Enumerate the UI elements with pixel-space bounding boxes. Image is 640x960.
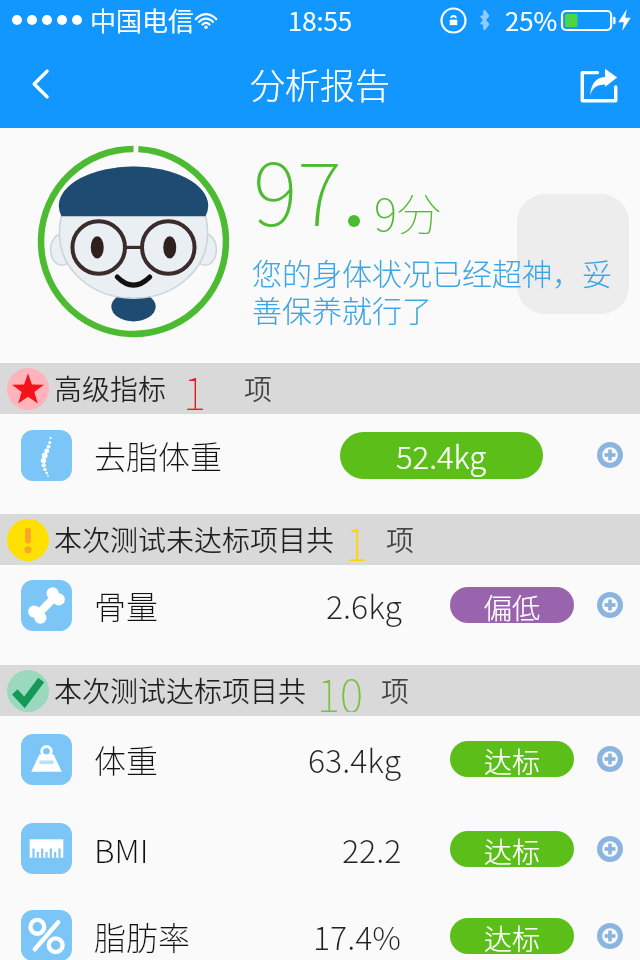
staticText: 63.4kg	[308, 736, 402, 782]
button[interactable]: Add	[590, 739, 630, 779]
staticText: 偏低	[484, 587, 541, 623]
staticText: 达标	[484, 741, 541, 777]
staticText: 骨量	[94, 582, 159, 628]
staticText: 本次测试未达标项目共	[54, 519, 335, 560]
button[interactable]: Add	[590, 585, 630, 625]
staticText: 10	[317, 661, 363, 712]
button[interactable]: 骨量	[0, 565, 640, 665]
staticText: 本次测试达标项目共	[54, 670, 307, 711]
staticText: 项	[244, 368, 273, 409]
button[interactable]: Share	[568, 53, 630, 115]
staticText: 项	[386, 519, 415, 560]
button[interactable]: 去脂体重	[0, 414, 640, 514]
staticText: 您的身体状况已经超神，妥善保养就行了	[252, 250, 620, 331]
staticText: 25%	[505, 1, 558, 39]
button[interactable]: Back	[10, 53, 72, 115]
staticText: 1	[345, 510, 368, 561]
staticText: 脂肪率	[94, 913, 191, 959]
staticText: 体重	[94, 736, 159, 782]
button[interactable]: 脂肪率	[0, 893, 640, 960]
button[interactable]: 体重	[0, 716, 640, 804]
button[interactable]: Add	[590, 829, 630, 869]
staticText: 52.4kg	[396, 433, 487, 478]
staticText: 项	[381, 670, 410, 711]
staticText: 2.6kg	[326, 582, 402, 628]
staticText: 17.4%	[313, 913, 402, 959]
staticText: 分析报告	[250, 58, 391, 109]
staticText: 97	[253, 126, 342, 251]
staticText: 22.2	[342, 826, 402, 872]
button[interactable]: BMI	[0, 804, 640, 893]
staticText: 去脂体重	[94, 432, 223, 478]
button[interactable]: Add	[590, 435, 630, 475]
staticText: 达标	[484, 831, 541, 867]
staticText: BMI	[94, 826, 149, 872]
staticText: 9分	[374, 180, 441, 244]
staticText: 1	[183, 359, 206, 410]
staticText: 中国电信	[90, 1, 195, 39]
staticText: 18:55	[288, 1, 353, 39]
staticText: 高级指标	[54, 368, 167, 409]
staticText: 达标	[484, 918, 541, 954]
button[interactable]: Add	[590, 916, 630, 956]
